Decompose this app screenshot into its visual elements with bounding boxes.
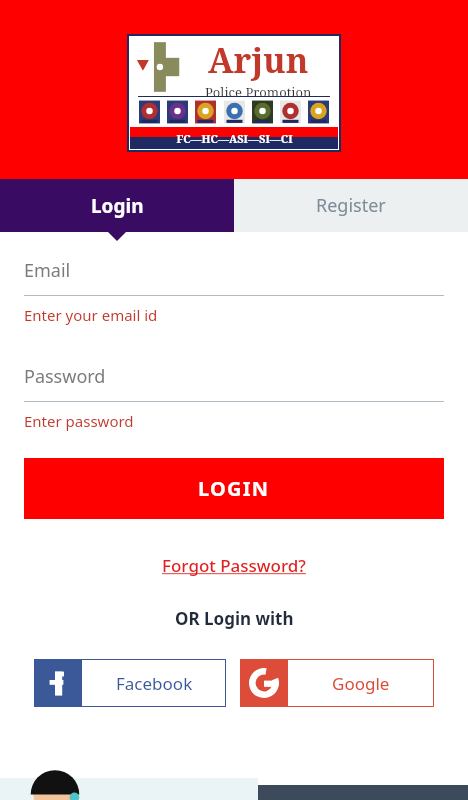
staticText: Login (91, 193, 144, 219)
button[interactable]: Login (0, 179, 234, 232)
staticText: Email (24, 258, 71, 283)
staticText: Forgot Password? (162, 554, 306, 577)
staticText: LOGIN (198, 475, 270, 502)
button[interactable]: Forgot Password? (154, 550, 314, 581)
button[interactable]: Facebook (34, 659, 226, 707)
staticText: Police (205, 83, 242, 96)
button[interactable]: Email (0, 258, 468, 325)
button[interactable]: Support chat (28, 778, 82, 800)
staticText: Facebook (116, 672, 193, 695)
staticText: Enter your email id (24, 305, 158, 325)
staticText: Password (24, 364, 106, 389)
button[interactable]: Register (234, 179, 468, 232)
button[interactable]: LOGIN (24, 458, 444, 519)
staticText: FC—HC—ASI—SI—CI (176, 131, 293, 146)
staticText: Register (316, 193, 386, 218)
staticText: Enter password (24, 411, 134, 431)
staticText: OR Login with (175, 607, 294, 630)
staticText: Promotion (242, 83, 312, 96)
staticText: Google (332, 672, 390, 695)
button[interactable]: Google (240, 659, 434, 707)
staticText: Arjun (208, 37, 309, 83)
button[interactable]: Password (0, 364, 468, 431)
